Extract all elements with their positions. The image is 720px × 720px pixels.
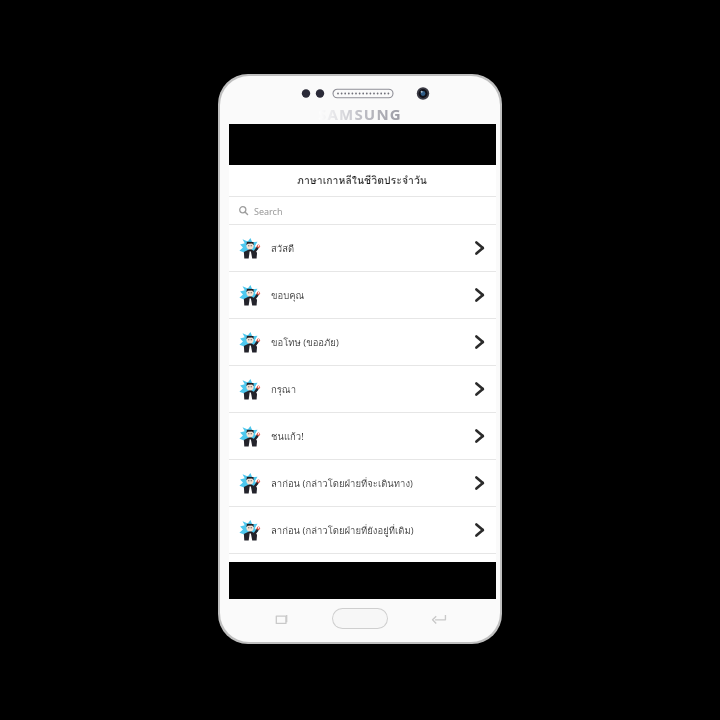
staticText: กรุณา	[271, 382, 467, 397]
button[interactable]: ลาก่อน (กล่าวโดยฝ่ายที่จะเดินทาง)	[229, 460, 496, 506]
other: Open	[473, 426, 486, 446]
button[interactable]: ขอโทษ (ขออภัย)	[229, 319, 496, 365]
button[interactable]: กรุณา	[229, 366, 496, 412]
other: Open	[473, 285, 486, 305]
other: Open	[473, 332, 486, 352]
staticText: Search	[254, 205, 283, 217]
staticText: ภาษาเกาหลีในชีวิตประจำวัน	[297, 172, 428, 189]
other: Open	[473, 379, 486, 399]
staticText: ขอบคุณ	[271, 288, 467, 303]
button[interactable]: Back	[426, 606, 452, 632]
button[interactable]: ขอบคุณ	[229, 272, 496, 318]
button[interactable]: ชนแก้ว!	[229, 413, 496, 459]
other: Open	[473, 520, 486, 540]
button[interactable]: Search	[229, 197, 496, 224]
button[interactable]: Home	[332, 608, 388, 629]
staticText: SAMSUNG	[318, 104, 402, 124]
button[interactable]: สวัสดี	[229, 225, 496, 271]
staticText: สวัสดี	[271, 241, 467, 256]
button[interactable]: ลาก่อน (กล่าวโดยฝ่ายที่ยังอยู่ที่เดิม)	[229, 507, 496, 553]
button[interactable]: Recent apps	[268, 606, 294, 632]
other: Open	[473, 238, 486, 258]
staticText: ชนแก้ว!	[271, 429, 467, 444]
other: Open	[473, 473, 486, 493]
staticText: ขอโทษ (ขออภัย)	[271, 335, 467, 350]
staticText: ลาก่อน (กล่าวโดยฝ่ายที่ยังอยู่ที่เดิม)	[271, 523, 467, 538]
staticText: ลาก่อน (กล่าวโดยฝ่ายที่จะเดินทาง)	[271, 476, 467, 491]
